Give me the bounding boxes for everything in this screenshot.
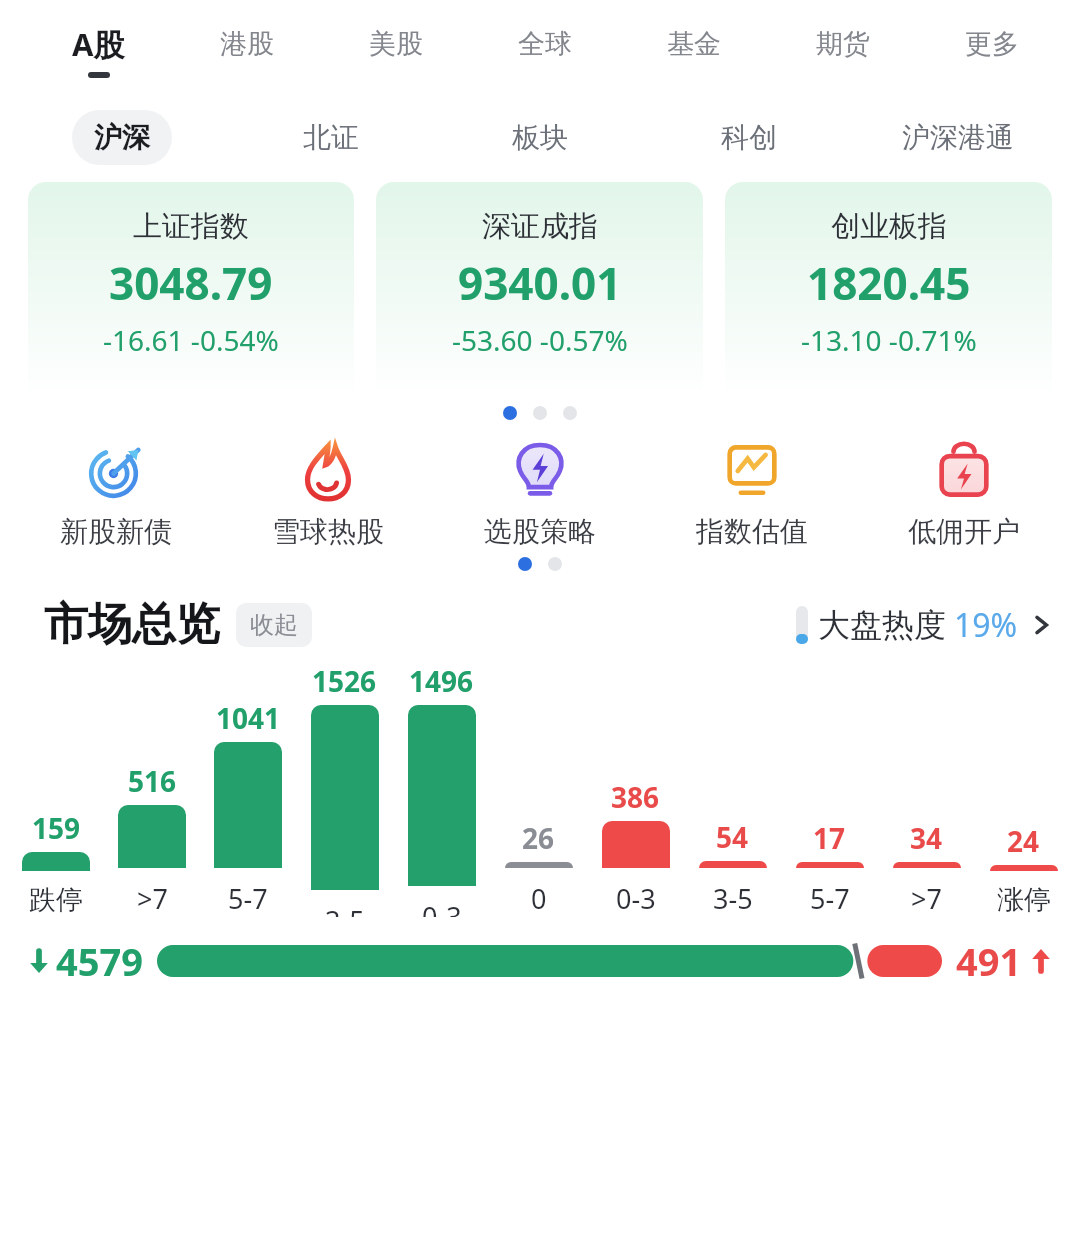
staticText: >7 (911, 880, 942, 917)
button[interactable]: A股 (24, 0, 172, 100)
staticText: -13.10 -0.71% (801, 321, 977, 359)
button[interactable]: 1526 (296, 662, 393, 917)
button[interactable]: 低佣开户 (858, 440, 1070, 549)
staticText: 新股新债 (60, 514, 172, 549)
button[interactable]: 基金 (619, 0, 768, 100)
button[interactable]: 17 (781, 819, 878, 917)
button[interactable]: 沪深港通 (880, 110, 1036, 165)
staticText: 34 (910, 819, 943, 857)
button[interactable]: 1496 (393, 662, 490, 917)
staticText: 跌停 (29, 883, 83, 917)
button[interactable]: 期货 (768, 0, 917, 100)
button[interactable]: 新股新债 (10, 440, 222, 549)
staticText: >7 (137, 880, 168, 917)
staticText: 1526 (312, 662, 377, 700)
staticText: 386 (611, 778, 660, 816)
staticText: 市场总览 (44, 597, 220, 652)
staticText: 54 (716, 818, 749, 856)
staticText: 19% (954, 603, 1018, 647)
staticText: 更多 (965, 27, 1019, 61)
staticText: 1041 (216, 699, 281, 737)
staticText: 上证指数 (133, 208, 249, 245)
staticText: 北证 (303, 120, 359, 155)
staticText: 美股 (369, 27, 423, 61)
staticText: 沪深 (94, 120, 150, 155)
button[interactable]: 科创 (699, 110, 799, 165)
staticText: 创业板指 (831, 208, 947, 245)
button[interactable]: 北证 (281, 110, 381, 165)
button[interactable]: 选股策略 (434, 440, 646, 549)
staticText: 24 (1007, 822, 1040, 860)
staticText: 3-5 (325, 902, 365, 917)
staticText: 涨停 (997, 883, 1051, 917)
staticText: 港股 (220, 27, 274, 61)
staticText: 基金 (667, 27, 721, 61)
button[interactable]: 港股 (172, 0, 321, 100)
button[interactable]: 全球 (470, 0, 619, 100)
staticText: 3048.79 (109, 253, 273, 313)
staticText: 低佣开户 (908, 514, 1020, 549)
staticText: 516 (128, 762, 177, 800)
button[interactable]: 386 (587, 778, 684, 917)
button[interactable]: 26 (490, 819, 587, 917)
staticText: 全球 (518, 27, 572, 61)
button[interactable]: 雪球热股 (222, 440, 434, 549)
staticText: 收起 (250, 610, 298, 640)
button[interactable]: 美股 (321, 0, 470, 100)
staticText: 159 (32, 809, 81, 847)
button[interactable]: 24 (975, 822, 1072, 917)
staticText: 期货 (816, 27, 870, 61)
button[interactable]: 大盘热度 (796, 603, 1052, 647)
staticText: -53.60 -0.57% (452, 321, 628, 359)
staticText: 5-7 (228, 880, 268, 917)
button[interactable]: 收起 (236, 603, 312, 647)
staticText: 板块 (512, 120, 568, 155)
button[interactable]: 指数估值 (646, 440, 858, 549)
staticText: 3-5 (713, 880, 753, 917)
staticText: A股 (72, 23, 125, 65)
staticText: -16.61 -0.54% (103, 321, 279, 359)
staticText: 0 (531, 880, 547, 917)
button[interactable]: 上证指数 (28, 182, 354, 400)
staticText: 5-7 (810, 880, 850, 917)
button[interactable]: 更多 (917, 0, 1066, 100)
staticText: 1820.45 (807, 253, 971, 313)
button[interactable]: 1041 (200, 699, 296, 917)
staticText: 0-3 (422, 898, 462, 917)
staticText: 26 (522, 819, 555, 857)
staticText: 沪深港通 (902, 120, 1014, 155)
button[interactable]: 159 (8, 809, 104, 917)
staticText: 大盘热度 (818, 605, 946, 645)
staticText: 雪球热股 (272, 514, 384, 549)
button[interactable]: 沪深 (72, 110, 172, 165)
staticText: 1496 (409, 662, 474, 700)
button[interactable]: 板块 (490, 110, 590, 165)
staticText: 深证成指 (482, 208, 598, 245)
staticText: 0-3 (616, 880, 656, 917)
button[interactable]: 54 (684, 818, 781, 917)
other: 查看大盘热度 (1032, 615, 1052, 635)
staticText: 选股策略 (484, 514, 596, 549)
button[interactable]: 创业板指 (725, 182, 1052, 400)
staticText: 4579 (56, 935, 143, 987)
staticText: 指数估值 (696, 514, 808, 549)
button[interactable]: 34 (878, 819, 975, 917)
staticText: 科创 (721, 120, 777, 155)
staticText: 9340.01 (458, 253, 622, 313)
button[interactable]: 深证成指 (376, 182, 703, 400)
staticText: 17 (813, 819, 846, 857)
staticText: 491 (956, 935, 1022, 987)
button[interactable]: 516 (104, 762, 200, 917)
